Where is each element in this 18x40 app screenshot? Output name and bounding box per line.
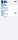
staticText: Display (3, 7, 8, 9)
staticText: Settings (1, 0, 8, 7)
staticText: General (3, 4, 8, 8)
staticText: Focus (3, 10, 5, 16)
staticText: 9:41 (1, 0, 5, 5)
staticText: Sounds (3, 9, 8, 13)
staticText: ▂▃▮ (14, 0, 17, 2)
staticText: Screen Time (3, 13, 8, 17)
